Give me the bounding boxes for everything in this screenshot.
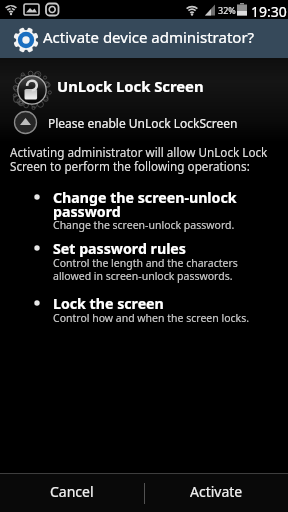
staticText: Change the screen-unlock password. [53,218,235,232]
staticText: Cancel [50,482,94,501]
staticText: Lock the screen [53,294,164,313]
staticText: Please enable UnLock LockScreen [48,115,238,131]
button[interactable] [14,111,37,134]
staticText: Activate device administrator? [43,27,255,47]
staticText: Change the screen-unlock password [53,188,237,221]
staticText: Control how and when the screen locks. [53,311,249,325]
button[interactable]: Cancel [0,472,144,510]
staticText: 19:30 [251,2,287,21]
staticText: Activating administrator will allow UnLo… [10,144,268,175]
staticText: Activate [190,482,243,501]
staticText: Control the length and the characters al… [53,256,238,283]
button[interactable]: Activate [144,472,288,510]
staticText: Set password rules [53,239,186,258]
staticText: UnLock Lock Screen [57,76,204,96]
staticText: 32% [218,4,236,16]
